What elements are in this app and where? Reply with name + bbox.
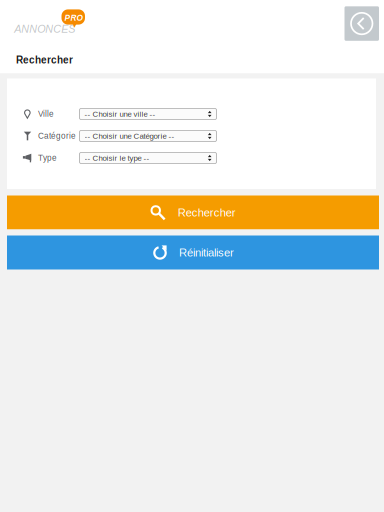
button[interactable]: -- Choisir une ville -- [79, 108, 216, 119]
staticText: Rechercher [16, 54, 73, 66]
staticText: -- Choisir le type -- [84, 154, 149, 162]
staticText: Rechercher [178, 206, 236, 219]
staticText: Catégorie [38, 131, 76, 141]
button[interactable]: -- Choisir le type -- [79, 152, 216, 163]
staticText: Réinitialiser [179, 246, 234, 259]
staticText: -- Choisir une ville -- [84, 110, 155, 118]
button[interactable]: Réinitialiser [7, 235, 379, 269]
staticText: ANNONCES [14, 23, 75, 35]
staticText: PRO [64, 13, 82, 22]
staticText: Type [38, 153, 57, 163]
button[interactable]: -- Choisir une Catégorie -- [79, 130, 216, 141]
button[interactable]: Rechercher [7, 195, 379, 229]
staticText: -- Choisir une Catégorie -- [84, 132, 174, 140]
staticText: Ville [38, 109, 54, 119]
button[interactable]: Retour [344, 6, 379, 41]
